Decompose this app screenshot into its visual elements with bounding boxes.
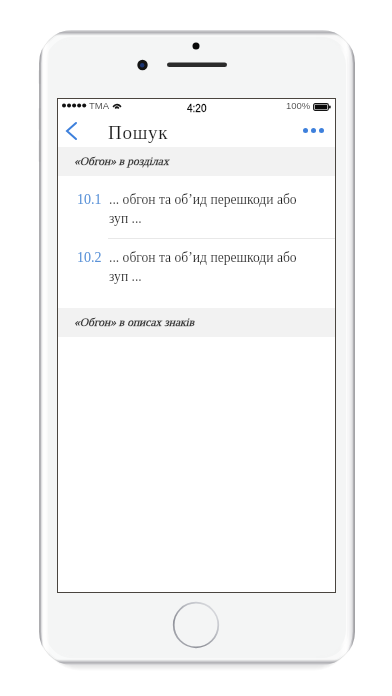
button[interactable]: 10.1 bbox=[58, 176, 335, 234]
button[interactable]: Back bbox=[58, 118, 84, 147]
staticText: 100% bbox=[286, 100, 311, 111]
staticText: «Обгон» в розділах bbox=[74, 155, 169, 168]
staticText: 10.2 bbox=[77, 250, 109, 266]
staticText: Пошук bbox=[108, 122, 169, 143]
staticText: TMA bbox=[89, 100, 110, 111]
button[interactable]: «Обгон» в розділах bbox=[58, 147, 335, 176]
staticText: 10.1 bbox=[77, 192, 109, 208]
staticText: «Обгон» в описах знаків bbox=[74, 316, 195, 329]
button[interactable]: «Обгон» в описах знаків bbox=[58, 308, 335, 337]
button[interactable]: More options bbox=[303, 116, 324, 145]
button[interactable]: 10.2 bbox=[58, 234, 335, 292]
staticText: ... обгон та об’ид перешкоди або зуп ... bbox=[109, 250, 297, 284]
staticText: ... обгон та об’ид перешкоди або зуп ... bbox=[109, 192, 297, 226]
staticText: 4:20 bbox=[187, 103, 207, 114]
